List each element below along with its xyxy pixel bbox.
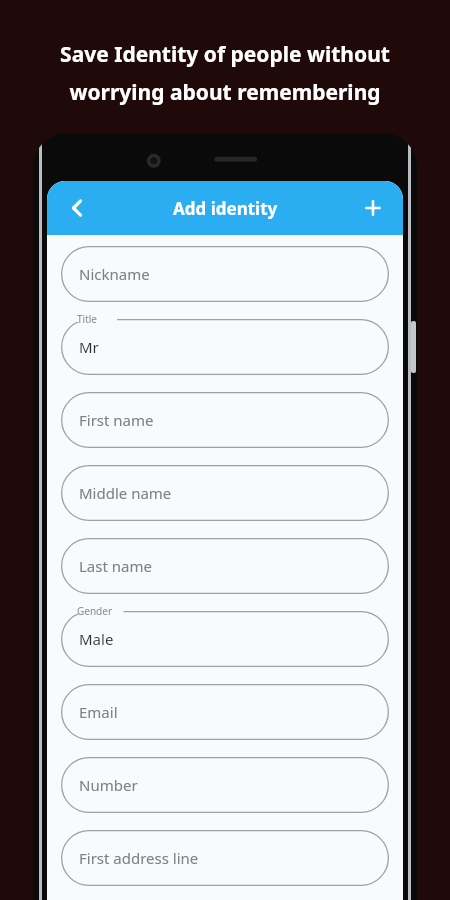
button[interactable]: Back [55,186,99,230]
button[interactable]: Email [61,684,389,740]
staticText: Nickname [79,264,150,284]
button[interactable]: Last name [61,538,389,594]
button[interactable]: Middle name [61,465,389,521]
staticText: Save Identity of people without [60,40,390,69]
button[interactable]: First address line [61,830,389,886]
staticText: Add identity [173,197,278,220]
staticText: worrying about remembering [69,78,381,107]
staticText: Gender [77,604,113,618]
staticText: Email [79,702,118,722]
staticText: First address line [79,848,199,868]
staticText: Number [79,775,138,795]
button[interactable]: Gender [61,611,389,667]
staticText: First name [79,410,154,430]
staticText: Last name [79,556,152,576]
button[interactable]: Nickname [61,246,389,302]
staticText: Mr [79,337,99,357]
staticText: Middle name [79,483,172,503]
button[interactable]: Number [61,757,389,813]
button[interactable]: First name [61,392,389,448]
staticText: Title [77,312,97,326]
button[interactable]: Title [61,319,389,375]
staticText: Male [79,629,114,649]
button[interactable]: Add [351,186,395,230]
